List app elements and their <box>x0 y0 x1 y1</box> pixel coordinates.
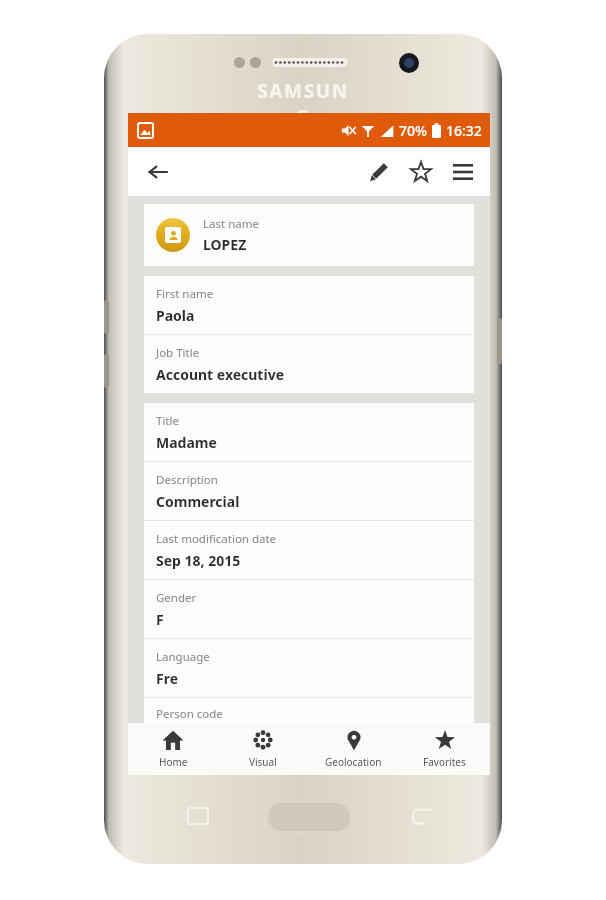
staticText: Home <box>159 755 188 769</box>
button[interactable]: Title <box>144 403 474 461</box>
button[interactable]: First name <box>144 276 474 334</box>
button[interactable]: Gender <box>144 580 474 638</box>
button[interactable]: Job Title <box>144 335 474 393</box>
staticText: Last name <box>203 216 259 232</box>
staticText: Paola <box>156 306 195 325</box>
staticText: Fre <box>156 669 179 688</box>
button[interactable]: Person code <box>144 698 474 736</box>
staticText: Favorites <box>423 755 466 769</box>
button[interactable]: Menu <box>442 151 484 193</box>
button[interactable]: Language <box>144 639 474 697</box>
staticText: Title <box>156 413 179 429</box>
button[interactable]: Home <box>128 723 218 775</box>
staticText: Description <box>156 472 218 488</box>
staticText: SAMSUNG <box>250 78 356 130</box>
button[interactable]: Visual <box>218 723 308 775</box>
button[interactable]: Last name <box>144 204 474 266</box>
button[interactable]: Favorite <box>400 151 442 193</box>
staticText: Gender <box>156 590 197 606</box>
button[interactable]: Description <box>144 462 474 520</box>
staticText: LOPEZ <box>203 235 247 254</box>
staticText: Person code <box>156 706 223 722</box>
staticText: Job Title <box>156 345 200 361</box>
button[interactable]: Edit <box>358 151 400 193</box>
staticText: F <box>156 610 164 629</box>
button[interactable]: Last modification date <box>144 521 474 579</box>
staticText: Geolocation <box>325 755 382 769</box>
button[interactable]: Geolocation <box>308 723 399 775</box>
staticText: 16:32 <box>446 121 482 140</box>
staticText: 70% <box>399 121 427 140</box>
staticText: First name <box>156 286 214 302</box>
staticText: Account executive <box>156 365 284 384</box>
staticText: Sep 18, 2015 <box>156 551 241 570</box>
staticText: Visual <box>249 755 277 769</box>
staticText: Language <box>156 649 210 665</box>
button[interactable]: Back <box>138 152 178 192</box>
staticText: Commercial <box>156 492 240 511</box>
staticText: Last modification date <box>156 531 277 547</box>
staticText: Madame <box>156 433 217 452</box>
button[interactable]: Favorites <box>399 723 490 775</box>
